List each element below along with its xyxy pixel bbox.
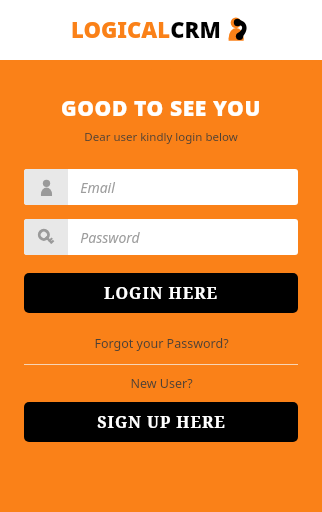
button[interactable]: Password xyxy=(24,219,298,255)
button[interactable]: New User? xyxy=(24,375,298,392)
staticText: SIGN UP HERE xyxy=(97,411,226,433)
staticText: Forgot your Password? xyxy=(94,335,229,352)
staticText: New User? xyxy=(130,375,193,392)
button[interactable]: Email xyxy=(24,169,298,205)
staticText: LOGICAL xyxy=(71,14,170,44)
button[interactable]: SIGN UP HERE xyxy=(24,402,298,442)
button[interactable]: LOGIN HERE xyxy=(24,273,298,313)
staticText: LOGIN HERE xyxy=(104,282,218,304)
staticText: GOOD TO SEE YOU xyxy=(61,94,261,123)
staticText: CRM xyxy=(170,14,221,44)
staticText: Email xyxy=(80,178,115,197)
staticText: Dear user kindly login below xyxy=(84,129,238,145)
button[interactable]: Forgot your Password? xyxy=(24,335,298,352)
staticText: Password xyxy=(80,228,140,247)
